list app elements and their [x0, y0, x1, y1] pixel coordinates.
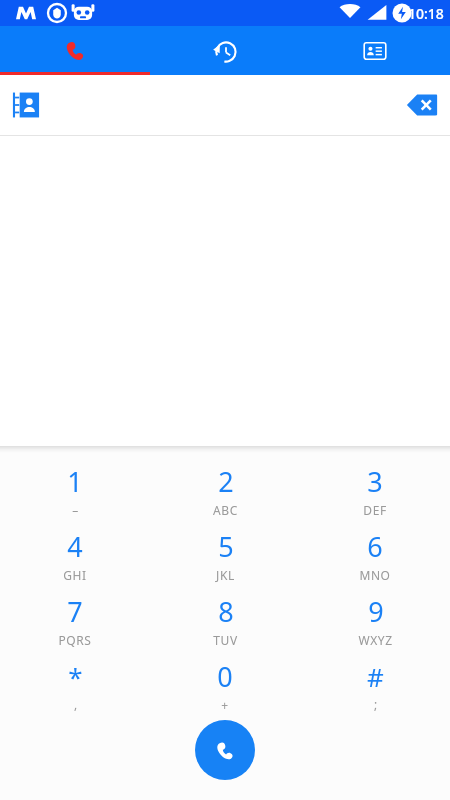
staticText: ,: [74, 696, 78, 712]
staticText: 10:18: [408, 4, 444, 23]
staticText: ;: [374, 696, 378, 712]
staticText: GHI: [63, 567, 87, 583]
button[interactable]: *: [0, 653, 150, 718]
button[interactable]: 1: [0, 458, 150, 523]
staticText: MNO: [359, 567, 391, 583]
button[interactable]: 7: [0, 588, 150, 653]
button[interactable]: Backspace: [394, 77, 450, 133]
staticText: ABC: [213, 502, 238, 518]
staticText: 7: [67, 593, 83, 630]
staticText: TUV: [213, 632, 238, 648]
staticText: 2: [218, 463, 234, 500]
staticText: WXYZ: [358, 632, 393, 648]
button[interactable]: 8: [150, 588, 300, 653]
staticText: 1: [67, 463, 83, 500]
staticText: +: [221, 697, 229, 713]
button[interactable]: Add contact: [0, 79, 52, 131]
staticText: 0: [217, 658, 233, 695]
button[interactable]: 5: [150, 523, 300, 588]
staticText: 9: [368, 593, 384, 630]
staticText: 8: [218, 593, 234, 630]
button[interactable]: 6: [300, 523, 450, 588]
staticText: PQRS: [58, 632, 92, 648]
button[interactable]: Dialpad: [0, 26, 150, 75]
button[interactable]: Call: [195, 720, 255, 780]
button[interactable]: 9: [300, 588, 450, 653]
button[interactable]: Contacts: [300, 26, 450, 75]
staticText: 6: [367, 528, 383, 565]
button[interactable]: #: [300, 653, 450, 718]
button[interactable]: 3: [300, 458, 450, 523]
button[interactable]: Call history: [150, 26, 300, 75]
staticText: –: [72, 502, 79, 518]
staticText: DEF: [363, 502, 387, 518]
button[interactable]: 4: [0, 523, 150, 588]
staticText: 5: [218, 528, 234, 565]
staticText: JKL: [216, 567, 235, 583]
staticText: 4: [67, 528, 83, 565]
button[interactable]: 0: [150, 653, 300, 718]
staticText: #: [367, 659, 384, 694]
staticText: 3: [367, 463, 383, 500]
staticText: *: [68, 659, 83, 694]
button[interactable]: 2: [150, 458, 300, 523]
